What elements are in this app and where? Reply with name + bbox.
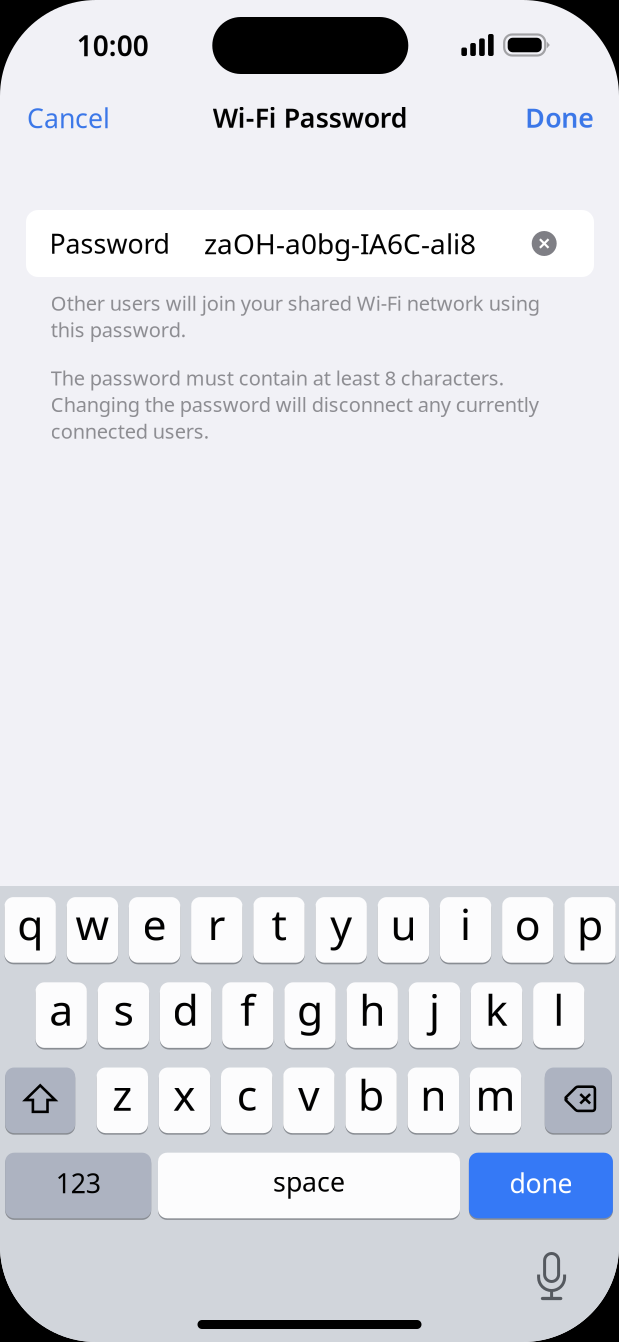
button[interactable]: Done bbox=[494, 90, 594, 144]
button[interactable]: h bbox=[346, 981, 398, 1049]
button[interactable]: i bbox=[440, 896, 491, 964]
staticText: t bbox=[271, 896, 286, 952]
staticText: l bbox=[553, 981, 564, 1037]
staticText: q bbox=[17, 896, 43, 952]
staticText: w bbox=[75, 896, 109, 952]
button[interactable]: q bbox=[4, 896, 56, 964]
staticText: v bbox=[298, 1066, 320, 1123]
button[interactable]: a bbox=[35, 981, 87, 1049]
staticText: i bbox=[460, 896, 471, 952]
staticText: zaOH-a0bg-IA6C-ali8 bbox=[204, 225, 476, 262]
staticText: The password must contain at least 8 cha… bbox=[51, 364, 539, 444]
staticText: Wi-Fi Password bbox=[213, 100, 408, 135]
button[interactable]: e bbox=[129, 896, 180, 964]
button[interactable]: Shift bbox=[5, 1066, 75, 1135]
staticText: a bbox=[49, 981, 73, 1037]
staticText: n bbox=[420, 1066, 446, 1123]
button[interactable]: Delete bbox=[545, 1066, 612, 1135]
button[interactable]: Dictation bbox=[523, 1247, 581, 1305]
button[interactable]: r bbox=[191, 896, 242, 964]
button[interactable]: o bbox=[502, 896, 553, 964]
button[interactable]: v bbox=[283, 1066, 335, 1135]
staticText: Done bbox=[525, 100, 594, 135]
button[interactable]: k bbox=[471, 981, 522, 1049]
staticText: Password bbox=[49, 226, 169, 261]
button[interactable]: x bbox=[159, 1066, 210, 1135]
staticText: o bbox=[515, 896, 541, 952]
button[interactable]: y bbox=[315, 896, 367, 964]
staticText: 10:00 bbox=[77, 27, 149, 64]
staticText: Other users will join your shared Wi-Fi … bbox=[51, 290, 540, 343]
button[interactable]: c bbox=[221, 1066, 272, 1135]
staticText: z bbox=[112, 1066, 132, 1123]
staticText: j bbox=[429, 981, 440, 1037]
staticText: r bbox=[208, 896, 226, 952]
staticText: done bbox=[509, 1165, 572, 1201]
staticText: c bbox=[237, 1066, 257, 1123]
button[interactable]: p bbox=[564, 896, 616, 964]
staticText: m bbox=[475, 1066, 515, 1123]
staticText: Cancel bbox=[27, 100, 110, 136]
button[interactable]: w bbox=[67, 896, 118, 964]
button[interactable]: t bbox=[253, 896, 305, 964]
staticText: f bbox=[240, 981, 255, 1037]
button[interactable]: s bbox=[98, 981, 149, 1049]
button[interactable]: Clear text bbox=[522, 221, 566, 265]
button[interactable]: Cancel bbox=[27, 91, 137, 145]
button[interactable]: space bbox=[158, 1151, 460, 1220]
staticText: b bbox=[358, 1066, 384, 1123]
button[interactable]: 123 bbox=[5, 1151, 151, 1220]
staticText: y bbox=[330, 896, 352, 952]
button[interactable]: z bbox=[97, 1066, 148, 1135]
staticText: space bbox=[273, 1164, 345, 1199]
button[interactable]: m bbox=[470, 1066, 521, 1135]
button[interactable]: l bbox=[533, 981, 584, 1049]
staticText: u bbox=[390, 896, 416, 952]
button[interactable]: j bbox=[409, 981, 460, 1049]
button[interactable]: done bbox=[469, 1151, 613, 1220]
button[interactable]: n bbox=[408, 1066, 459, 1135]
button[interactable]: f bbox=[222, 981, 273, 1049]
staticText: x bbox=[173, 1066, 196, 1123]
staticText: e bbox=[143, 896, 167, 952]
staticText: p bbox=[577, 896, 603, 952]
button[interactable]: g bbox=[284, 981, 336, 1049]
staticText: k bbox=[485, 981, 508, 1037]
staticText: h bbox=[359, 981, 385, 1037]
staticText: 123 bbox=[56, 1165, 101, 1201]
staticText: s bbox=[113, 981, 133, 1037]
staticText: g bbox=[297, 981, 323, 1037]
button[interactable]: b bbox=[345, 1066, 397, 1135]
staticText: d bbox=[173, 981, 199, 1037]
button[interactable]: d bbox=[160, 981, 211, 1049]
button[interactable]: u bbox=[378, 896, 429, 964]
